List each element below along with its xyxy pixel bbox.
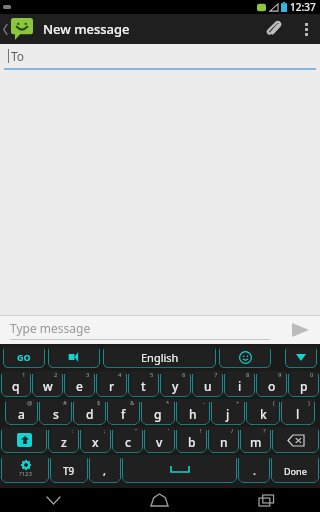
button[interactable]: l — [281, 399, 315, 425]
button[interactable]: c — [112, 427, 143, 453]
button[interactable]: T9 — [50, 455, 88, 483]
staticText: x — [92, 434, 99, 450]
staticText: 1 — [22, 371, 26, 379]
staticText: ' — [168, 427, 170, 435]
button[interactable]: f — [107, 399, 140, 425]
button[interactable]: r — [96, 371, 127, 397]
staticText: ?123 — [19, 470, 32, 478]
staticText: c — [125, 434, 131, 450]
button[interactable]: z — [48, 427, 79, 453]
staticText: - — [203, 399, 205, 407]
staticText: : — [72, 427, 74, 435]
button[interactable]: o — [256, 371, 287, 397]
staticText: & — [130, 399, 135, 407]
button[interactable]: q — [1, 371, 31, 397]
button[interactable]: j — [211, 399, 245, 425]
button[interactable]: To — [0, 44, 320, 68]
button[interactable]: t — [128, 371, 159, 397]
staticText: 2 — [54, 371, 58, 379]
button[interactable]: Home — [106, 488, 213, 512]
staticText: # — [63, 399, 67, 407]
staticText: g — [154, 406, 162, 422]
staticText: h — [189, 406, 197, 422]
button[interactable]: Shift — [1, 427, 47, 453]
button[interactable]: Emoji — [219, 346, 271, 368]
staticText: 6 — [182, 371, 186, 379]
staticText: + — [236, 399, 240, 407]
button[interactable]: Send — [280, 316, 320, 344]
staticText: 9 — [278, 371, 282, 379]
button[interactable]: n — [208, 427, 239, 453]
button[interactable]: a — [5, 399, 38, 425]
button[interactable]: Back — [0, 488, 106, 512]
button[interactable]: Done — [271, 455, 319, 483]
staticText: To — [11, 48, 25, 64]
button[interactable]: m — [240, 427, 271, 453]
staticText: m — [250, 434, 262, 450]
staticText: v — [156, 434, 163, 450]
button[interactable]: Hide keyboard — [285, 346, 317, 368]
button[interactable]: Recent apps — [213, 488, 320, 512]
button[interactable] — [0, 14, 37, 44]
button[interactable]: i — [224, 371, 255, 397]
button[interactable]: d — [73, 399, 106, 425]
button[interactable]: k — [246, 399, 280, 425]
staticText: Done — [284, 465, 307, 477]
staticText: 5 — [150, 371, 154, 379]
button[interactable]: Voice — [48, 346, 100, 368]
staticText: 8 — [246, 371, 250, 379]
button[interactable]: s — [39, 399, 72, 425]
staticText: T9 — [63, 464, 75, 478]
button[interactable]: More options — [292, 14, 320, 44]
button[interactable]: x — [80, 427, 111, 453]
button[interactable]: b — [176, 427, 207, 453]
staticText: GO — [17, 351, 31, 363]
button[interactable]: Language — [103, 346, 216, 368]
button[interactable]: , — [89, 455, 121, 483]
staticText: f — [121, 406, 126, 422]
staticText: p — [300, 378, 308, 394]
button[interactable]: v — [144, 427, 175, 453]
button[interactable]: w — [32, 371, 63, 397]
staticText: a — [18, 406, 25, 422]
button[interactable]: e — [64, 371, 95, 397]
staticText: j — [226, 406, 230, 422]
button[interactable]: g — [141, 399, 175, 425]
staticText: @ — [27, 399, 33, 407]
staticText: t — [141, 378, 146, 394]
staticText: * — [166, 399, 170, 407]
staticText: 0 — [310, 371, 314, 379]
button[interactable]: Attach — [256, 14, 292, 44]
staticText: English — [141, 350, 179, 365]
button[interactable]: p — [288, 371, 319, 397]
button[interactable]: . — [238, 455, 270, 483]
button[interactable]: Go — [3, 346, 45, 368]
button[interactable]: y — [160, 371, 191, 397]
staticText: ; — [104, 427, 106, 435]
staticText: ! — [200, 427, 202, 435]
staticText: l — [296, 406, 300, 422]
staticText: u — [204, 378, 212, 394]
staticText: e — [76, 378, 83, 394]
button[interactable]: u — [192, 371, 223, 397]
staticText: Type message — [10, 320, 91, 336]
staticText: s — [53, 406, 59, 422]
button[interactable]: Backspace — [272, 427, 319, 453]
staticText: ? — [263, 427, 266, 435]
staticText: b — [188, 434, 196, 450]
staticText: i — [238, 378, 242, 394]
staticText: , — [103, 463, 107, 478]
staticText: r — [109, 378, 115, 394]
staticText: w — [43, 378, 53, 394]
button[interactable]: Symbols — [1, 455, 49, 483]
staticText: ( — [273, 399, 275, 407]
staticText: 4 — [118, 371, 122, 379]
button[interactable]: Type message — [10, 320, 270, 340]
button[interactable]: h — [176, 399, 210, 425]
staticText: 7 — [214, 371, 218, 379]
staticText: y — [172, 378, 179, 394]
staticText: / — [231, 427, 234, 435]
button[interactable]: Space — [122, 455, 237, 483]
staticText: New message — [43, 20, 130, 38]
staticText: ) — [308, 399, 310, 407]
